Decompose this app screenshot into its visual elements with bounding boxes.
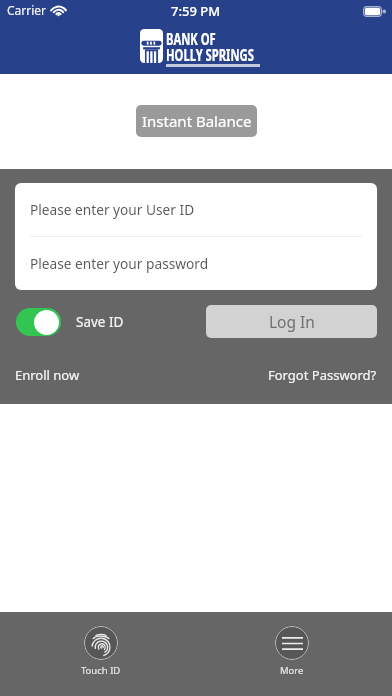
other: Touch ID xyxy=(91,632,111,655)
button[interactable]: More xyxy=(261,626,322,677)
staticText: 7:59 PM xyxy=(171,2,221,20)
staticText: Enroll now xyxy=(15,366,80,384)
button[interactable]: Save ID xyxy=(16,308,124,336)
button[interactable]: Touch ID xyxy=(70,626,131,677)
other: More xyxy=(282,637,303,650)
button[interactable]: Instant Balance xyxy=(136,105,257,137)
button[interactable]: Enroll now xyxy=(15,366,80,384)
staticText: Forgot Password? xyxy=(268,366,377,384)
staticText: Save ID xyxy=(76,313,124,331)
staticText: Touch ID xyxy=(81,664,121,677)
button[interactable]: Please enter your password xyxy=(15,237,377,290)
button[interactable]: Forgot Password? xyxy=(268,366,377,384)
staticText: Please enter your password xyxy=(30,254,209,273)
staticText: Carrier xyxy=(7,2,47,18)
button[interactable]: Log In xyxy=(206,305,377,338)
button[interactable]: Please enter your User ID xyxy=(15,183,377,236)
staticText: BANK OF xyxy=(166,28,216,49)
staticText: HOLLY SPRINGS xyxy=(166,44,254,65)
staticText: Instant Balance xyxy=(142,111,252,131)
staticText: Log In xyxy=(269,311,315,332)
staticText: Please enter your User ID xyxy=(30,200,195,219)
staticText: More xyxy=(280,664,304,677)
